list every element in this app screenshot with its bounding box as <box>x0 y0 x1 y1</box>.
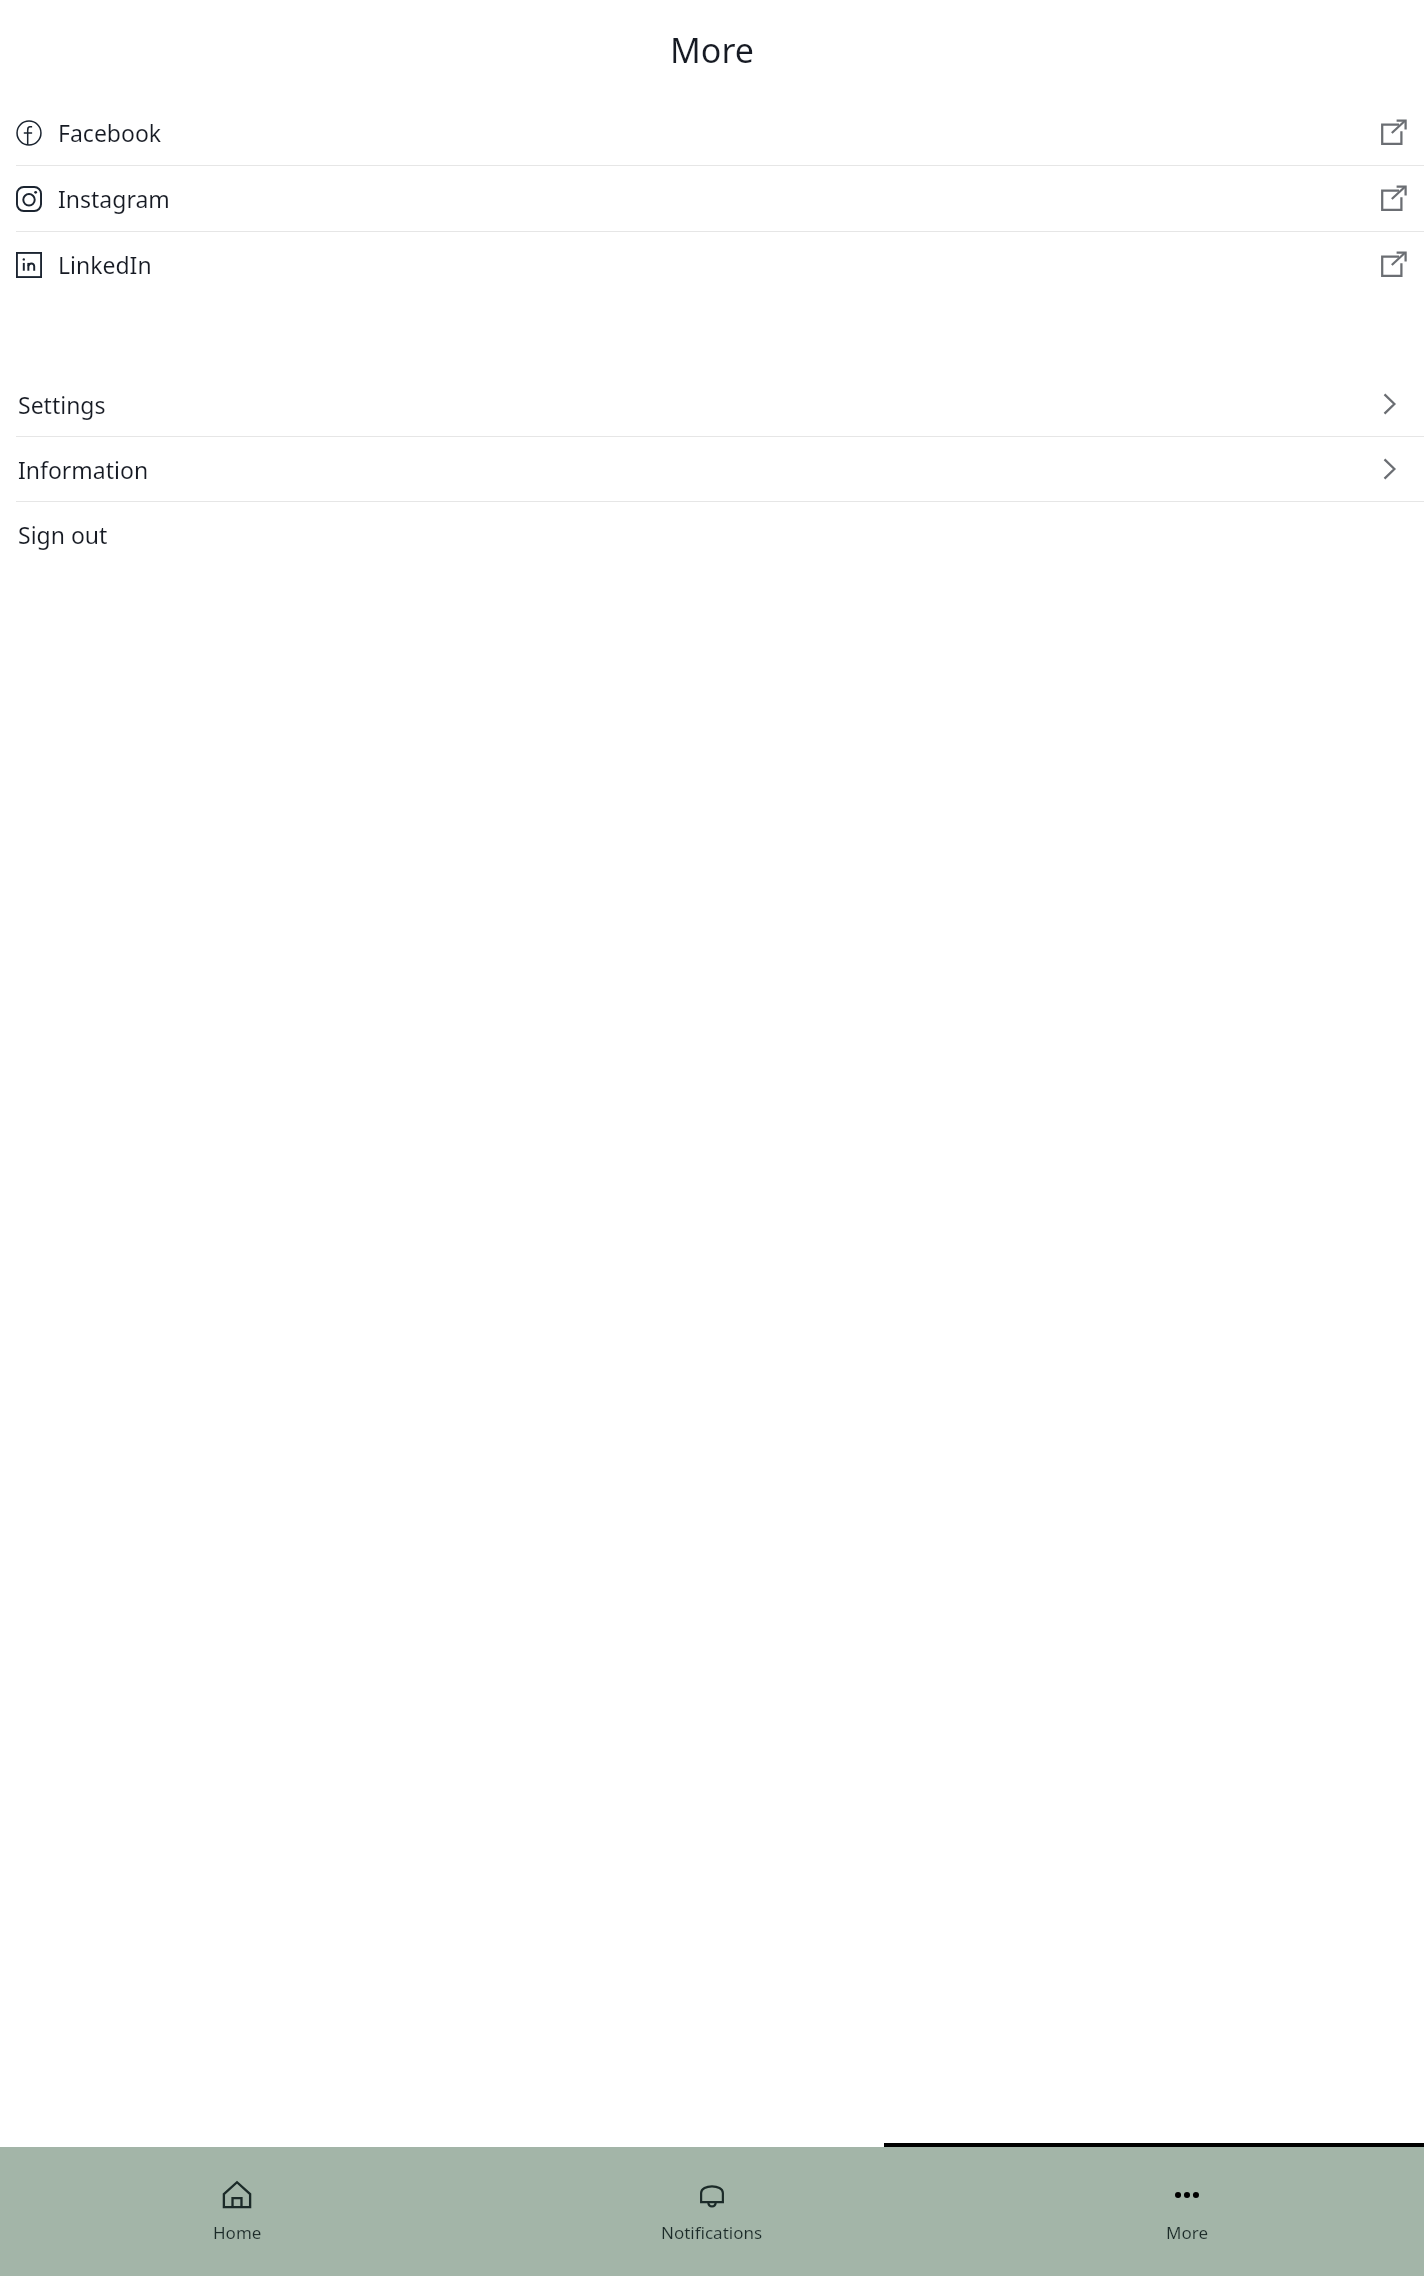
staticText: Settings <box>18 389 106 420</box>
staticText: Sign out <box>18 519 108 550</box>
button[interactable]: Instagram <box>0 166 1424 231</box>
button[interactable]: Settings <box>0 372 1424 436</box>
staticText: Notifications <box>661 2221 763 2244</box>
other: Open LinkedIn <box>1378 250 1408 280</box>
button[interactable]: Information <box>0 437 1424 501</box>
staticText: LinkedIn <box>58 249 152 280</box>
button[interactable]: Home <box>0 2147 474 2276</box>
other: Open Instagram <box>1378 184 1408 214</box>
button[interactable]: More <box>949 2147 1424 2276</box>
staticText: More <box>670 27 754 73</box>
staticText: Home <box>213 2221 262 2244</box>
button[interactable]: Facebook <box>0 100 1424 165</box>
button[interactable]: Notifications <box>474 2147 949 2276</box>
button[interactable]: Sign out <box>0 502 1424 566</box>
staticText: More <box>1166 2221 1208 2244</box>
staticText: Instagram <box>58 183 170 214</box>
staticText: Facebook <box>58 117 162 148</box>
button[interactable]: LinkedIn <box>0 232 1424 297</box>
other: Open Facebook <box>1378 118 1408 148</box>
staticText: Information <box>18 454 149 485</box>
